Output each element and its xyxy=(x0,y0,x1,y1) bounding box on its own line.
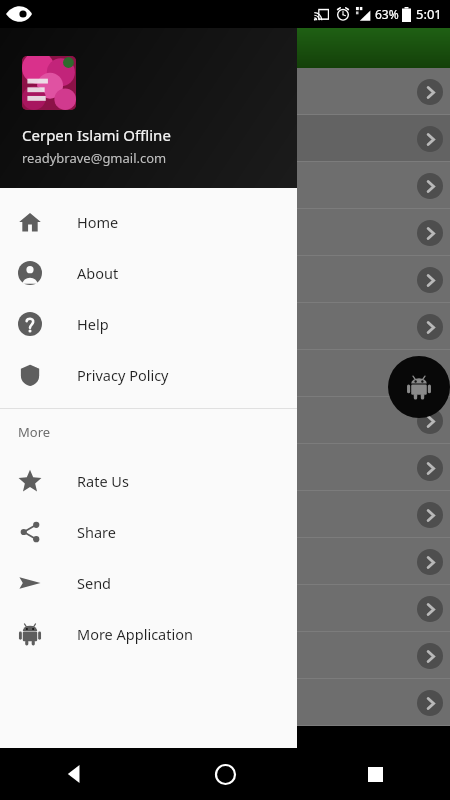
staticText: Cerpen ... rindu xyxy=(12,364,114,383)
button[interactable] xyxy=(0,491,450,538)
button[interactable] xyxy=(0,444,450,491)
staticText: Rate Us xyxy=(77,471,129,491)
button[interactable]: Recent apps xyxy=(300,748,450,800)
button[interactable] xyxy=(0,209,450,256)
button[interactable]: Send xyxy=(0,557,297,608)
button[interactable]: Cerpen Islami ... sampai... (Last P... xyxy=(0,303,450,350)
button[interactable]: Home xyxy=(150,748,300,800)
staticText: Cerpen Islami ... sampai... (Last P... xyxy=(12,317,237,336)
staticText: 63% xyxy=(375,6,399,22)
button[interactable] xyxy=(0,115,450,162)
staticText: Cerpen Islami ... yang menepati... xyxy=(12,270,232,289)
button[interactable] xyxy=(0,585,450,632)
staticText: More xyxy=(18,423,51,441)
button[interactable]: More applications xyxy=(388,356,450,418)
button[interactable] xyxy=(0,397,450,444)
button[interactable] xyxy=(0,162,450,209)
button[interactable]: Back xyxy=(0,748,150,800)
button[interactable]: Home xyxy=(0,196,297,247)
staticText: readybrave@gmail.com xyxy=(22,149,167,167)
button[interactable]: Help xyxy=(0,298,297,349)
staticText: Send xyxy=(77,573,112,593)
staticText: Home xyxy=(77,212,119,232)
button[interactable]: Rate Us xyxy=(0,455,297,506)
staticText: Share xyxy=(77,522,116,542)
staticText: Privacy Policy xyxy=(77,365,169,385)
staticText: Help xyxy=(77,314,109,334)
button[interactable] xyxy=(0,68,450,115)
button[interactable] xyxy=(0,632,450,679)
staticText: Cerpen Islami Offline xyxy=(22,125,171,145)
staticText: 5:01 xyxy=(416,5,442,23)
button[interactable]: More Application xyxy=(0,608,297,659)
button[interactable]: Cerpen ... rindu xyxy=(0,350,450,397)
button[interactable]: Share xyxy=(0,506,297,557)
button[interactable] xyxy=(0,679,450,726)
button[interactable]: About xyxy=(0,247,297,298)
button[interactable] xyxy=(0,538,450,585)
staticText: More Application xyxy=(77,624,193,644)
staticText: About xyxy=(77,263,119,283)
button[interactable]: Privacy Policy xyxy=(0,349,297,400)
button[interactable]: Cerpen Islami ... yang menepati... xyxy=(0,256,450,303)
